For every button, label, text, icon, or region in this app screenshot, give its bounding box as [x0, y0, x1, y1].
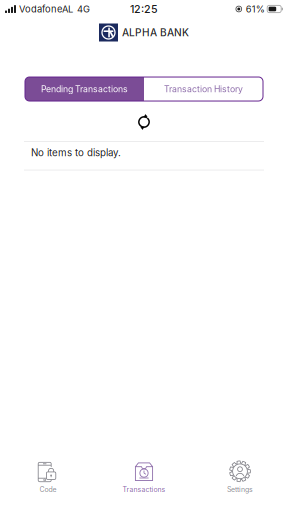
staticText: 4G	[77, 3, 90, 15]
staticText: Settings	[227, 485, 253, 494]
button[interactable]: Transactions	[96, 452, 192, 502]
button[interactable]: Refresh	[133, 114, 155, 130]
staticText: Transactions	[122, 485, 165, 494]
staticText: Transaction History	[164, 84, 243, 94]
staticText: 61%	[246, 3, 265, 15]
button[interactable]: Pending Transactions	[25, 77, 144, 101]
staticText: No items to display.	[31, 147, 121, 158]
button[interactable]: Transaction History	[144, 77, 263, 101]
staticText: VodafoneAL	[19, 3, 73, 15]
staticText: Pending Transactions	[41, 84, 128, 94]
staticText: Code	[39, 485, 56, 494]
button[interactable]: Settings	[192, 452, 288, 502]
button[interactable]: Code	[0, 452, 96, 502]
staticText: ALPHA BANK	[122, 26, 189, 39]
staticText: 12:25	[130, 2, 158, 15]
